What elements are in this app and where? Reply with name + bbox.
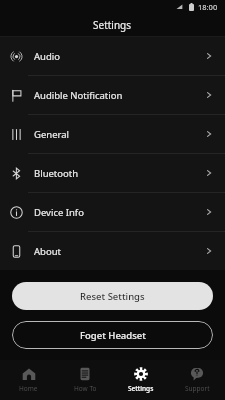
button[interactable]: How To bbox=[57, 360, 113, 400]
button[interactable]: About bbox=[0, 232, 225, 270]
button[interactable]: Foget Headset bbox=[12, 321, 213, 349]
staticText: About bbox=[34, 245, 205, 258]
button[interactable]: Device Info bbox=[0, 193, 225, 231]
button[interactable]: Settings bbox=[113, 360, 169, 400]
button[interactable]: Bluetooth bbox=[0, 154, 225, 192]
button[interactable]: General bbox=[0, 115, 225, 153]
button[interactable]: Support bbox=[169, 360, 225, 400]
staticText: Home bbox=[19, 384, 38, 393]
staticText: How To bbox=[74, 384, 97, 393]
staticText: Reset Settings bbox=[80, 290, 145, 303]
button[interactable]: Home bbox=[0, 360, 57, 400]
staticText: Settings bbox=[93, 18, 132, 32]
staticText: General bbox=[34, 128, 205, 141]
staticText: Audible Notification bbox=[34, 89, 205, 102]
staticText: Bluetooth bbox=[34, 167, 205, 180]
staticText: Foget Headset bbox=[80, 329, 146, 342]
button[interactable]: Audible Notification bbox=[0, 76, 225, 114]
staticText: Settings bbox=[128, 384, 154, 393]
button[interactable]: Reset Settings bbox=[12, 282, 213, 310]
staticText: Device Info bbox=[34, 206, 205, 219]
staticText: 18:00 bbox=[198, 2, 218, 12]
button[interactable]: Audio bbox=[0, 37, 225, 75]
staticText: Support bbox=[185, 384, 210, 393]
staticText: Audio bbox=[34, 50, 205, 63]
